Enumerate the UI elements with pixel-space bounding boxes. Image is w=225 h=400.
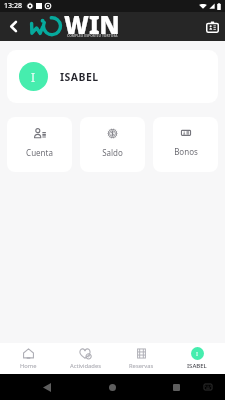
staticText: I: [196, 350, 199, 358]
staticText: Cuenta: [26, 147, 53, 158]
button[interactable]: Recents: [165, 374, 187, 400]
button[interactable]: Actividades: [57, 343, 113, 374]
staticText: WIN: [64, 8, 120, 37]
staticText: COMPLEX ESPORTIU TORTOSA: [67, 33, 118, 37]
staticText: Saldo: [102, 147, 123, 158]
button[interactable]: Bonos: [153, 117, 218, 172]
button[interactable]: Cuenta: [7, 117, 72, 172]
staticText: 13:28: [4, 1, 22, 11]
staticText: Actividades: [70, 362, 101, 370]
button[interactable]: Back: [36, 374, 58, 400]
button[interactable]: Home: [101, 374, 123, 400]
staticText: I: [31, 69, 36, 85]
button[interactable]: Back: [0, 12, 26, 41]
staticText: Bonos: [174, 146, 198, 157]
button[interactable]: Saldo: [80, 117, 145, 172]
button[interactable]: Reservas: [113, 343, 169, 374]
button[interactable]: I: [169, 343, 225, 374]
button[interactable]: Membership card: [199, 12, 225, 41]
button[interactable]: Home: [0, 343, 57, 374]
staticText: Home: [20, 362, 37, 370]
staticText: ISABEL: [187, 362, 207, 370]
button[interactable]: Keyboard: [200, 374, 216, 400]
staticText: Reservas: [129, 362, 154, 370]
staticText: ISABEL: [60, 70, 99, 84]
button[interactable]: I: [7, 50, 218, 103]
